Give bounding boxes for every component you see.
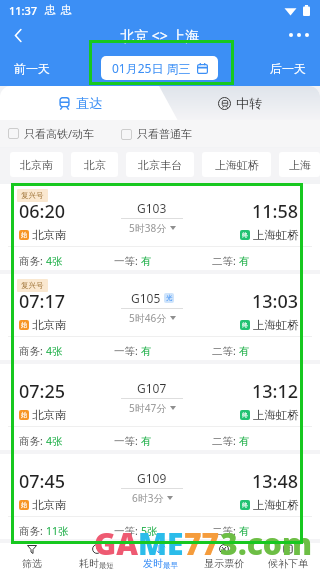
staticText: 终 [242, 321, 248, 329]
staticText: .com [238, 523, 312, 564]
staticText: 有 [239, 255, 250, 268]
button[interactable]: 北京 [71, 152, 118, 177]
button[interactable]: 只看普通车 [121, 124, 192, 144]
staticText: 北京南 [32, 408, 67, 422]
staticText: 最短 [99, 561, 114, 570]
staticText: 北京南 [32, 498, 67, 512]
staticText: 光 [166, 294, 173, 302]
button[interactable]: 复兴号 [0, 274, 320, 364]
staticText: 77 [184, 523, 220, 564]
staticText: 终 [242, 501, 248, 509]
staticText: 商务: [19, 524, 46, 538]
staticText: 忠 [61, 3, 72, 17]
button[interactable]: 筛选 [0, 543, 64, 570]
staticText: G107 [137, 380, 167, 396]
staticText: 13:03 [252, 289, 299, 314]
staticText: 11:58 [252, 199, 299, 224]
staticText: 5时46分 [129, 311, 167, 325]
staticText: 直达 [76, 95, 102, 111]
staticText: 4张 [46, 434, 63, 448]
staticText: 复兴号 [21, 191, 44, 200]
staticText: GA [94, 523, 138, 564]
staticText: 06:20 [19, 199, 66, 224]
staticText: 耗时 [79, 557, 99, 570]
staticText: 候补下单 [268, 557, 308, 570]
staticText: 忠 [45, 3, 56, 17]
staticText: 有 [239, 435, 250, 448]
button[interactable]: Back [0, 20, 36, 50]
staticText: 最早 [163, 561, 178, 570]
staticText: 北京南 [32, 228, 67, 242]
staticText: 一等: [114, 254, 141, 268]
staticText: 有 [141, 255, 152, 268]
button[interactable]: 只看高铁/动车 [8, 123, 95, 144]
staticText: 4张 [46, 254, 63, 268]
button[interactable]: 上海虹桥 [202, 152, 271, 177]
staticText: 07:25 [19, 379, 66, 404]
staticText: 前一天 [14, 61, 50, 76]
staticText: 5时38分 [129, 221, 167, 235]
staticText: 01月25日 周三 [112, 60, 191, 76]
staticText: G109 [137, 470, 167, 486]
button[interactable]: 显示票价 [192, 543, 256, 570]
staticText: 有 [239, 525, 250, 538]
button[interactable]: 复兴号 [0, 184, 320, 274]
staticText: 13:48 [252, 469, 299, 494]
staticText: 13:12 [252, 379, 299, 404]
staticText: 4张 [46, 344, 63, 358]
button[interactable]: 上海 [279, 152, 320, 177]
staticText: 商务: [19, 434, 46, 448]
button[interactable]: 中转 [160, 86, 320, 120]
staticText: 上海虹桥 [253, 408, 299, 422]
staticText: 3 [220, 523, 238, 564]
staticText: 07:45 [19, 469, 66, 494]
staticText: 始 [21, 411, 27, 419]
button[interactable]: 后一天 [266, 55, 310, 82]
staticText: 二等: [212, 254, 239, 268]
staticText: 二等: [212, 344, 239, 358]
staticText: G103 [137, 200, 167, 216]
button[interactable]: 07:25 [0, 364, 320, 454]
staticText: 北京 [84, 158, 106, 172]
button[interactable]: 发时最早 [128, 543, 192, 570]
staticText: 上海 [289, 158, 311, 172]
staticText: 只看高铁/动车 [24, 126, 95, 141]
staticText: 07:17 [19, 289, 66, 314]
staticText: 11张 [46, 524, 69, 538]
staticText: 上海虹桥 [253, 318, 299, 332]
button[interactable]: 北京南 [10, 152, 63, 177]
staticText: 11:37 [9, 3, 38, 18]
staticText: 显示票价 [204, 557, 244, 570]
staticText: 始 [21, 321, 27, 329]
staticText: 筛选 [22, 557, 42, 570]
staticText: 商务: [19, 254, 46, 268]
staticText: 北京南 [20, 158, 53, 172]
staticText: 终 [242, 231, 248, 239]
staticText: 5张 [141, 524, 158, 538]
staticText: 上海虹桥 [215, 158, 259, 172]
staticText: 后一天 [270, 61, 306, 76]
staticText: 5时47分 [129, 401, 167, 415]
staticText: 一等: [114, 524, 141, 538]
button[interactable]: 直达 [0, 86, 160, 120]
staticText: 北京 <> 上海 [120, 26, 200, 45]
staticText: 终 [242, 411, 248, 419]
button[interactable]: More options [278, 20, 320, 50]
button[interactable]: 前一天 [10, 55, 54, 82]
button[interactable]: 耗时最短 [64, 543, 128, 570]
button[interactable]: 07:45 [0, 454, 320, 543]
staticText: 商务: [19, 344, 46, 358]
staticText: 中转 [236, 95, 262, 111]
button[interactable]: 01月25日 周三 [101, 56, 218, 80]
staticText: 只看普通车 [137, 127, 192, 141]
staticText: 发时 [143, 557, 163, 570]
staticText: 一等: [114, 344, 141, 358]
button[interactable]: 北京丰台 [126, 152, 194, 177]
staticText: 一等: [114, 434, 141, 448]
staticText: 上海虹桥 [253, 498, 299, 512]
staticText: ME [138, 523, 184, 564]
staticText: 北京南 [32, 318, 67, 332]
staticText: 始 [21, 501, 27, 509]
staticText: 有 [141, 435, 152, 448]
button[interactable]: 候补下单 [256, 543, 320, 570]
